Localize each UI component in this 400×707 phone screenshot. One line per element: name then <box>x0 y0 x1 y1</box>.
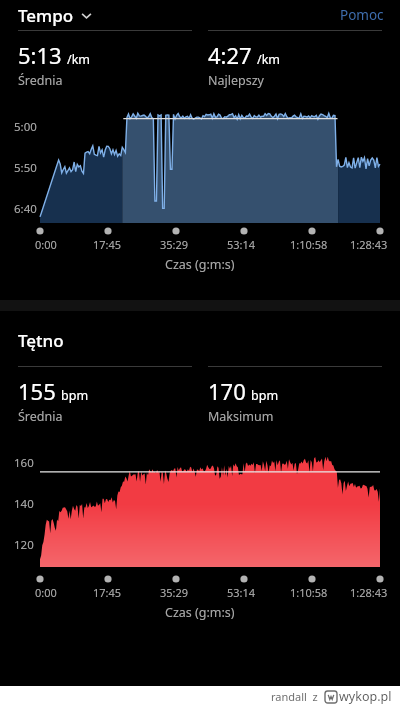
staticText: Średnia <box>18 408 63 425</box>
staticText: bpm <box>251 387 279 404</box>
staticText: 35:29 <box>160 237 189 252</box>
staticText: /km <box>257 51 281 68</box>
staticText: 140 <box>14 496 34 512</box>
staticText: 5:00 <box>14 119 37 135</box>
button[interactable]: 155 <box>18 376 192 425</box>
staticText: Tętno <box>18 329 64 352</box>
staticText: 5:13 <box>18 40 62 70</box>
button[interactable]: 170 <box>208 376 382 425</box>
staticText: Czas (g:m:s) <box>165 604 235 621</box>
staticText: Pomoc <box>340 6 384 24</box>
staticText: 1:28:43 <box>350 237 388 252</box>
staticText: Maksimum <box>208 408 274 425</box>
staticText: 170 <box>208 376 246 406</box>
staticText: 5:50 <box>14 160 37 176</box>
staticText: 4:27 <box>208 40 252 70</box>
staticText: 120 <box>14 537 34 553</box>
button[interactable]: Tempo <box>18 4 93 27</box>
staticText: /km <box>67 51 91 68</box>
staticText: 17:45 <box>93 237 122 252</box>
staticText: 53:14 <box>227 237 256 252</box>
staticText: randall z <box>271 689 318 704</box>
staticText: 1:10:58 <box>290 237 328 252</box>
button[interactable]: Pomoc <box>340 6 384 24</box>
staticText: Czas (g:m:s) <box>165 256 235 273</box>
staticText: Tempo <box>18 4 74 27</box>
staticText: 35:29 <box>160 585 189 600</box>
staticText: 0:00 <box>35 585 57 600</box>
button[interactable]: 5:13 <box>18 40 192 89</box>
staticText: 53:14 <box>227 585 256 600</box>
button[interactable]: 4:27 <box>208 40 382 89</box>
staticText: wykop.pl <box>339 688 392 705</box>
staticText: bpm <box>61 387 89 404</box>
staticText: 17:45 <box>93 585 122 600</box>
staticText: Najlepszy <box>208 72 264 89</box>
staticText: 1:10:58 <box>290 585 328 600</box>
staticText: 160 <box>14 455 34 471</box>
staticText: 1:28:43 <box>350 585 388 600</box>
staticText: Średnia <box>18 72 63 89</box>
staticText: 0:00 <box>35 237 57 252</box>
staticText: 6:40 <box>14 201 37 217</box>
staticText: 155 <box>18 376 56 406</box>
